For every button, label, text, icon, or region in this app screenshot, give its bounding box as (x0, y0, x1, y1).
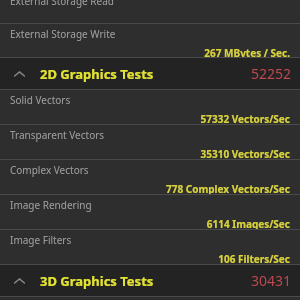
button[interactable]: External Storage Write (0, 24, 300, 57)
staticText: 2D Graphics Tests (40, 65, 154, 83)
staticText: External Storage Read (10, 0, 114, 8)
button[interactable]: Transparent Vectors (0, 125, 300, 159)
button[interactable]: Image Rendering (0, 195, 300, 229)
staticText: Complex Vectors (10, 163, 89, 177)
other: Collapse section (8, 63, 30, 85)
staticText: Solid Vectors (10, 93, 71, 107)
staticText: Transparent Vectors (10, 128, 105, 142)
button[interactable]: Collapse section (0, 58, 300, 89)
staticText: 57332 Vectors/Sec (10, 112, 290, 124)
staticText: Image Filters (10, 233, 72, 247)
button[interactable]: External Storage Read (0, 0, 300, 23)
staticText: 6114 Images/Sec (10, 217, 290, 229)
button[interactable]: Solid Vectors (0, 90, 300, 124)
staticText: 106 Filters/Sec (10, 252, 290, 264)
button[interactable]: Collapse section (0, 265, 300, 296)
other: Collapse section (8, 270, 30, 292)
staticText: 30431 (251, 271, 292, 290)
button[interactable]: Image Filters (0, 230, 300, 264)
staticText: Image Rendering (10, 198, 92, 212)
button[interactable]: Complex Vectors (0, 160, 300, 194)
staticText: External Storage Write (10, 27, 116, 41)
staticText: 778 Complex Vectors/Sec (10, 182, 290, 194)
staticText: 52252 (251, 64, 292, 83)
staticText: 267 MBytes / Sec. (10, 46, 290, 57)
staticText: 3D Graphics Tests (40, 272, 154, 290)
staticText: 35310 Vectors/Sec (10, 147, 290, 159)
